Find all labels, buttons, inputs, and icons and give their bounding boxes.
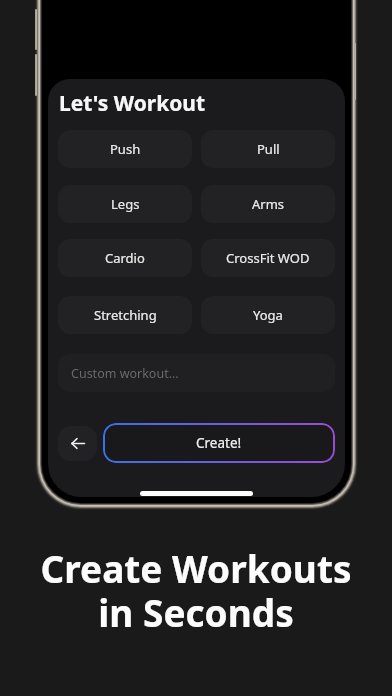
button[interactable]: Stretching xyxy=(58,296,192,334)
staticText: Custom workout... xyxy=(71,365,179,382)
staticText: Legs xyxy=(111,195,140,213)
button[interactable]: Custom workout... xyxy=(58,354,335,392)
button[interactable]: Yoga xyxy=(201,296,335,334)
button[interactable]: Back xyxy=(58,426,97,461)
button[interactable]: CrossFit WOD xyxy=(201,239,335,277)
staticText: Stretching xyxy=(94,306,157,324)
staticText: Pull xyxy=(257,140,280,158)
staticText: Let's Workout xyxy=(59,89,206,118)
staticText: Cardio xyxy=(105,249,145,267)
staticText: Create! xyxy=(196,434,242,452)
staticText: Push xyxy=(110,140,141,158)
staticText: Yoga xyxy=(253,306,283,324)
button[interactable]: Cardio xyxy=(58,239,192,277)
staticText: CrossFit WOD xyxy=(226,249,310,267)
button[interactable]: Push xyxy=(58,130,192,168)
button[interactable]: Pull xyxy=(201,130,335,168)
staticText: Create Workouts xyxy=(40,543,352,593)
button[interactable]: Arms xyxy=(201,185,335,223)
button[interactable]: Legs xyxy=(58,185,192,223)
staticText: Arms xyxy=(252,195,285,213)
button[interactable]: Create! xyxy=(103,423,335,463)
staticText: in Seconds xyxy=(98,587,294,637)
